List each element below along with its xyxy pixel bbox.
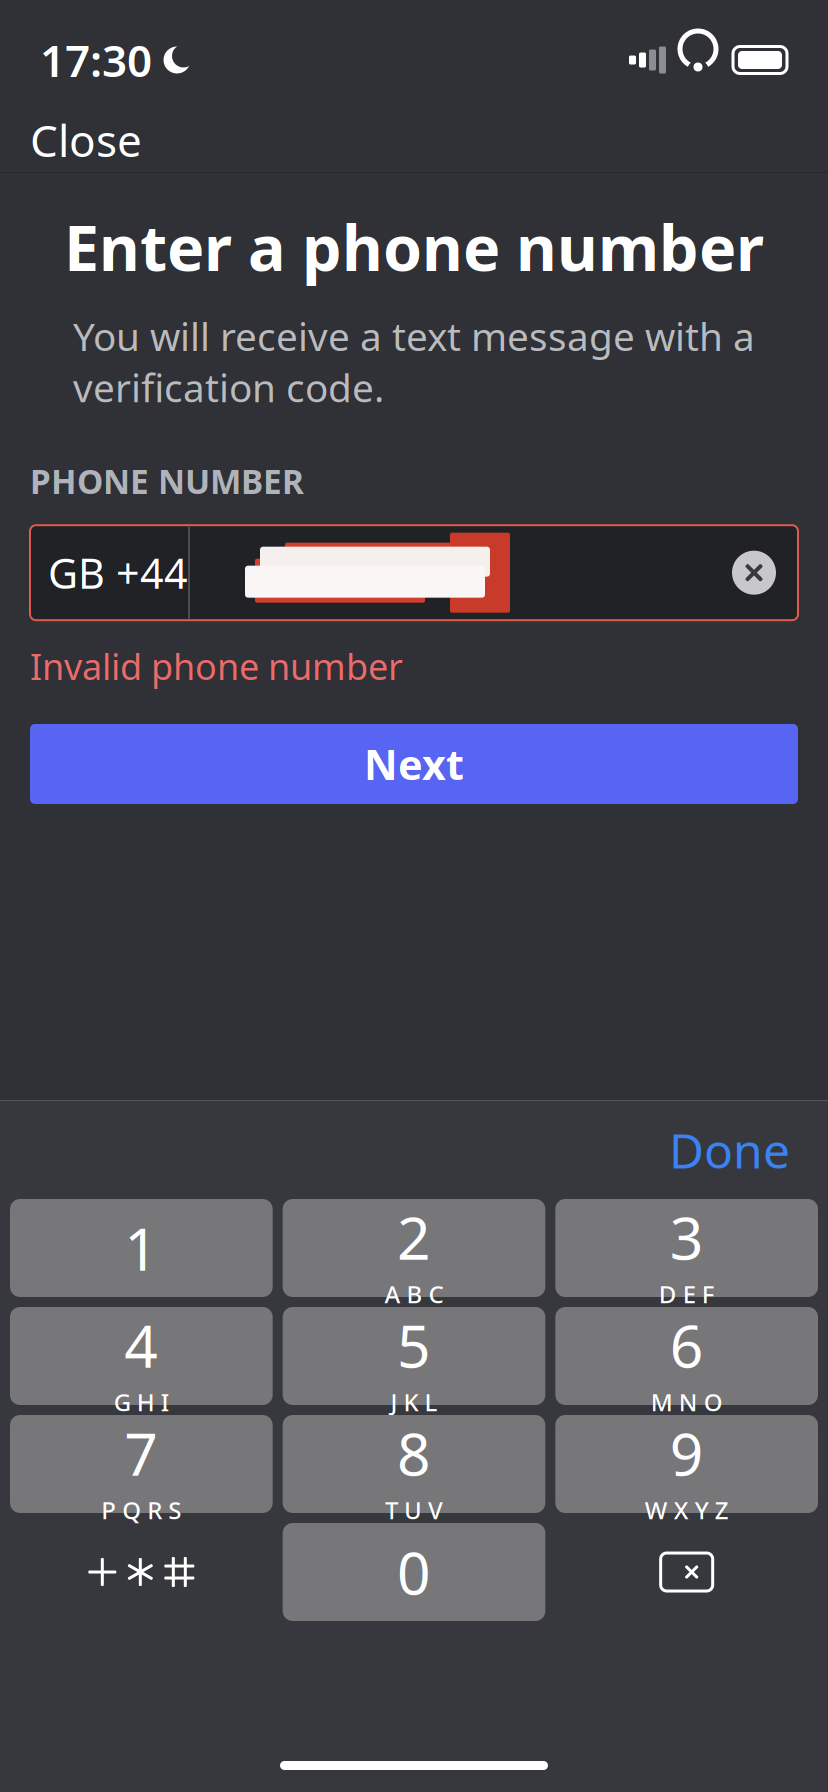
staticText: J K L [390,1386,437,1418]
staticText: Next [364,736,464,791]
button[interactable]: 3 [555,1199,818,1297]
button[interactable]: 8 [283,1415,545,1513]
button[interactable]: 7 [10,1415,273,1513]
button[interactable]: 2 [283,1199,545,1297]
button[interactable]: 0 [283,1523,545,1621]
button[interactable]: 4 [10,1307,273,1405]
staticText: M N O [651,1386,723,1418]
staticText: You will receive a text message with a v… [73,310,755,413]
button[interactable]: 9 [555,1415,818,1513]
staticText: Close [30,111,142,169]
staticText: PHONE NUMBER [30,459,304,503]
staticText: T U V [385,1494,443,1526]
staticText: 9 [670,1414,704,1492]
staticText: 5 [397,1306,431,1384]
button[interactable]: Clear text [722,541,786,605]
staticText: 7 [124,1414,158,1492]
staticText: 0 [397,1533,431,1611]
button[interactable]: Delete [555,1523,818,1621]
staticText: 17:30 [40,31,152,89]
staticText: 6 [670,1306,704,1384]
button[interactable]: Done [649,1106,810,1194]
staticText: Enter a phone number [64,205,764,288]
staticText: 2 [397,1198,431,1276]
staticText: P Q R S [101,1494,181,1526]
button[interactable]: 6 [555,1307,818,1405]
staticText: 1 [124,1209,158,1287]
staticText: 8 [397,1414,431,1492]
staticText: Done [669,1118,790,1182]
button[interactable]: 5 [283,1307,545,1405]
staticText: W X Y Z [645,1494,729,1526]
staticText: G H I [114,1386,169,1418]
button[interactable]: 1 [10,1199,273,1297]
button[interactable]: Close [12,97,160,183]
button[interactable]: Next [30,724,798,804]
button[interactable]: Symbols [10,1523,273,1621]
staticText: 3 [670,1198,704,1276]
staticText: A B C [384,1278,443,1310]
staticText: 4 [124,1306,158,1384]
staticText: Invalid phone number [30,642,403,690]
staticText: D E F [659,1278,715,1310]
staticText: GB +44 [48,545,188,600]
